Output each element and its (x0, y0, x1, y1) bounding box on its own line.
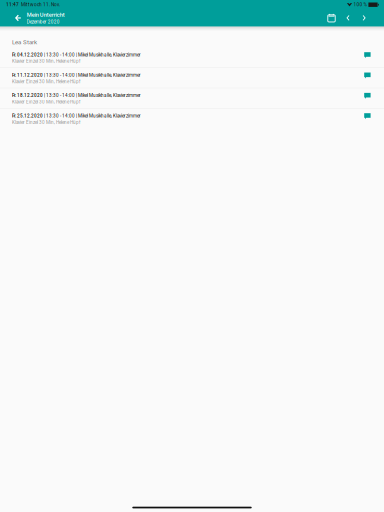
staticText: Mein Unterricht (27, 11, 65, 18)
button[interactable]: Kalender (323, 10, 340, 26)
staticText: Klavier Einzel 30 Min, Helene Hüpf (12, 79, 81, 84)
button[interactable]: Fr. 18.12.2020 | 13:30 - 14:00 | Mikel M… (0, 88, 384, 108)
staticText: 11:47 (6, 2, 19, 7)
button[interactable]: Back (9, 10, 27, 26)
button[interactable]: Fr. 04.12.2020 | 13:30 - 14:00 | Mikel M… (0, 48, 384, 67)
staticText: 100 % (354, 2, 367, 7)
button[interactable]: Nächster Monat (356, 10, 372, 26)
staticText: Fr. 18.12.2020 | 13:30 - 14:00 | Mikel M… (12, 93, 141, 98)
staticText: Klavier Einzel 30 Min, Helene Hüpf (12, 99, 81, 105)
staticText: Mittwoch 11. Nov. (21, 2, 60, 7)
button[interactable]: Fr. 11.12.2020 | 13:30 - 14:00 | Mikel M… (0, 68, 384, 88)
staticText: Klavier Einzel 30 Min, Helene Hüpf (12, 120, 81, 125)
button[interactable]: Vorheriger Monat (340, 10, 356, 26)
staticText: Fr. 25.12.2020 | 13:30 - 14:00 | Mikel M… (12, 113, 141, 119)
staticText: Dezember 2020 (27, 19, 60, 25)
button[interactable]: Fr. 25.12.2020 | 13:30 - 14:00 | Mikel M… (0, 109, 384, 128)
staticText: Klavier Einzel 30 Min, Helene Hüpf (12, 59, 81, 64)
staticText: Fr. 11.12.2020 | 13:30 - 14:00 | Mikel M… (12, 73, 141, 78)
staticText: Fr. 04.12.2020 | 13:30 - 14:00 | Mikel M… (12, 52, 141, 57)
staticText: Lea Stark (12, 38, 37, 46)
